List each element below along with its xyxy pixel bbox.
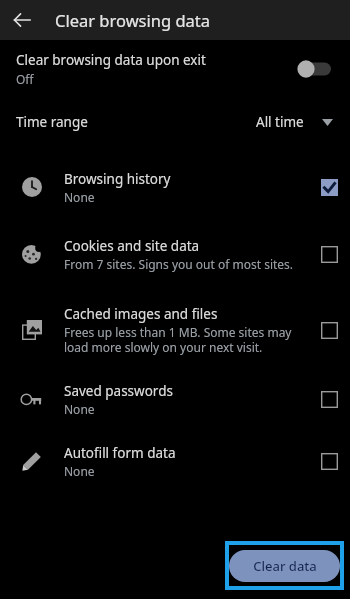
button[interactable]: Clear data [229, 550, 340, 582]
staticText: Clear data [253, 557, 317, 575]
staticText: None [64, 189, 95, 205]
staticText: Off [16, 71, 34, 87]
staticText: From 7 sites. Signs you out of most site… [64, 256, 294, 272]
button[interactable]: Cookies and site data [308, 216, 350, 292]
staticText: Cached images and files [64, 305, 218, 323]
button[interactable]: Clear browsing data upon exit [0, 40, 350, 98]
button[interactable]: Autofill form data [308, 430, 350, 492]
button[interactable]: Time range [0, 98, 350, 146]
staticText: Browsing history [64, 170, 171, 188]
button[interactable]: Back [8, 6, 36, 34]
staticText: Frees up less than 1 MB. Some sites may … [64, 324, 296, 355]
button[interactable]: Cookies and site data [0, 216, 350, 292]
staticText: Cookies and site data [64, 237, 200, 255]
staticText: None [64, 463, 95, 479]
staticText: None [64, 401, 95, 417]
button[interactable]: Autofill form data [0, 430, 350, 492]
staticText: Clear browsing data upon exit [16, 51, 206, 69]
button[interactable]: Saved passwords [0, 368, 350, 430]
staticText: All time [256, 113, 304, 131]
button[interactable]: Cached images and files [308, 292, 350, 368]
button[interactable]: Saved passwords [308, 368, 350, 430]
button[interactable]: Clear browsing data upon exit toggle [292, 47, 336, 91]
button[interactable]: Browsing history [308, 158, 350, 216]
button[interactable]: Cached images and files [0, 292, 350, 368]
staticText: Clear browsing data [55, 9, 211, 31]
staticText: Saved passwords [64, 382, 173, 400]
staticText: Time range [16, 113, 256, 131]
button[interactable]: Browsing history [0, 158, 350, 216]
staticText: Autofill form data [64, 444, 176, 462]
